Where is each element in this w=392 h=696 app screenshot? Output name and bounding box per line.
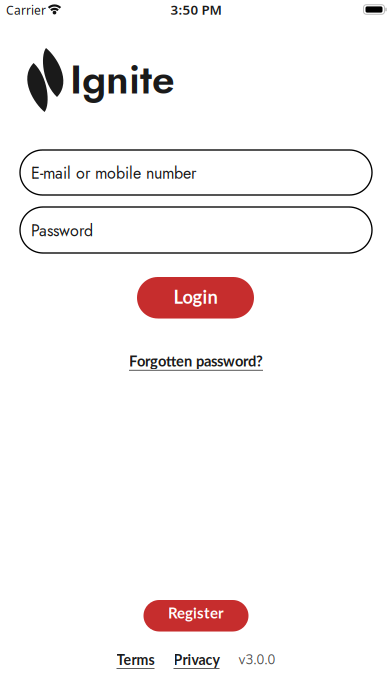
button[interactable]: Forgotten password? (129, 352, 263, 370)
staticText: Register (168, 604, 224, 622)
staticText: Login (173, 286, 217, 308)
staticText: Password (31, 219, 93, 242)
button[interactable]: Password (20, 207, 372, 253)
staticText: Forgotten password? (129, 352, 263, 370)
button[interactable]: Privacy (173, 651, 219, 668)
staticText: Ignite (70, 50, 175, 109)
button[interactable]: E-mail or mobile number (20, 150, 372, 195)
button[interactable]: Login (137, 277, 254, 318)
staticText: 3:50 PM (170, 1, 221, 18)
staticText: Carrier (6, 2, 46, 18)
staticText: Privacy (173, 651, 219, 668)
staticText: E-mail or mobile number (31, 162, 196, 185)
staticText: Terms (116, 651, 154, 668)
button[interactable]: Terms (116, 651, 154, 668)
button[interactable]: Register (143, 600, 248, 631)
staticText: v3.0.0 (238, 651, 275, 668)
